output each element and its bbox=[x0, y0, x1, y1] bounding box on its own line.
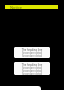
button[interactable]: The heading line here bbox=[14, 47, 50, 58]
button[interactable]: Notice bbox=[5, 5, 58, 9]
staticText: The heading line here bbox=[20, 63, 44, 66]
staticText: Secondary detail line bbox=[20, 54, 44, 57]
staticText: Secondary detail line bbox=[20, 66, 44, 69]
staticText: Secondary detail line bbox=[20, 69, 44, 72]
button[interactable]: Navigation bbox=[0, 86, 41, 90]
staticText: Secondary detail line bbox=[20, 51, 44, 54]
staticText: Secondary detail line bbox=[20, 72, 44, 75]
button[interactable]: The heading line here bbox=[14, 62, 50, 75]
staticText: Notice bbox=[10, 5, 23, 9]
staticText: The heading line here bbox=[20, 48, 44, 51]
